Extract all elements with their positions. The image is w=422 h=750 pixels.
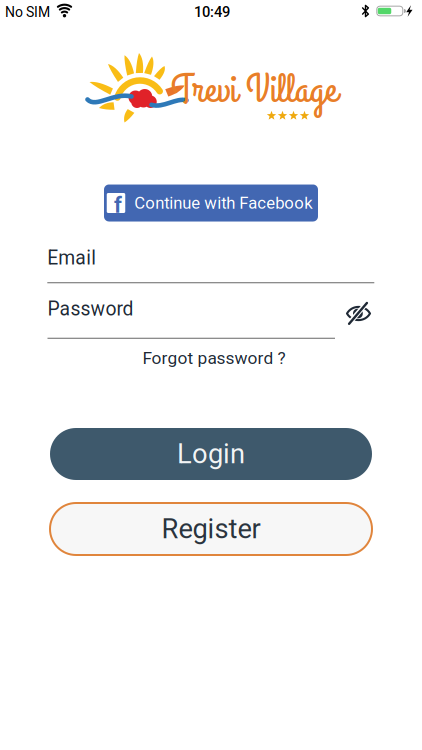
staticText: Password (47, 297, 133, 320)
button[interactable]: Email (47, 246, 374, 283)
staticText: Forgot password ? (142, 348, 285, 368)
staticText: Continue with Facebook (134, 193, 312, 213)
button[interactable] (345, 302, 371, 324)
staticText: No SIM (5, 4, 50, 20)
staticText: f (114, 192, 122, 218)
staticText: Trevi Village (171, 62, 337, 118)
staticText: 10:49 (194, 3, 230, 21)
staticText: Login (177, 438, 245, 470)
staticText: Email (47, 246, 96, 269)
button[interactable]: Forgot password ? (142, 348, 285, 368)
button[interactable]: Register (50, 503, 372, 555)
button[interactable]: Login (50, 428, 372, 480)
staticText: Register (161, 513, 260, 545)
button[interactable]: Password (47, 297, 335, 339)
button[interactable]: f (104, 184, 318, 221)
